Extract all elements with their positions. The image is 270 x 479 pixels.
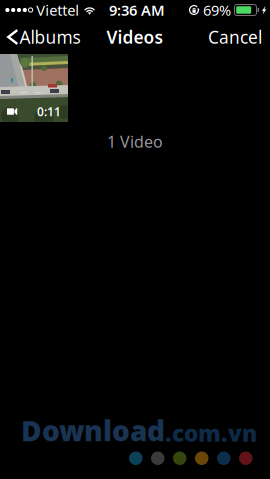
staticText: Cancel xyxy=(208,25,262,48)
staticText: 1 Video xyxy=(107,131,163,152)
staticText: Videos xyxy=(106,25,163,48)
button[interactable]: Video, 0:11 xyxy=(0,54,68,122)
button[interactable]: Cancel xyxy=(208,22,270,52)
staticText: .com.vn xyxy=(165,418,257,448)
staticText: Albums xyxy=(20,25,81,48)
staticText: Viettel xyxy=(36,0,79,20)
staticText: 9:36 AM xyxy=(109,0,165,20)
staticText: Download xyxy=(21,412,165,449)
button[interactable]: Albums xyxy=(0,22,81,52)
staticText: 69% xyxy=(203,0,231,20)
staticText: 0:11 xyxy=(37,104,61,119)
